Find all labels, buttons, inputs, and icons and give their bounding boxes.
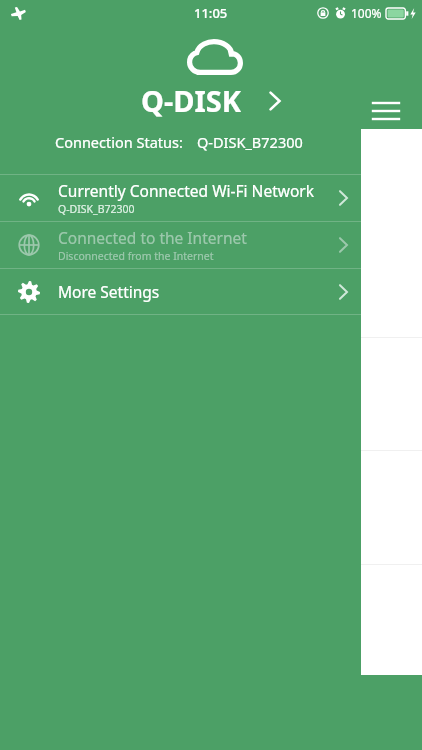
staticText: Disconnected from the Internet xyxy=(58,249,214,263)
staticText: 100% xyxy=(351,5,382,21)
staticText: Connected to the Internet xyxy=(58,227,247,248)
button[interactable]: Currently Connected Wi-Fi Network xyxy=(0,175,361,221)
staticText: Currently Connected Wi-Fi Network xyxy=(58,180,314,201)
button[interactable]: Menu xyxy=(363,88,408,133)
staticText: Q-DISK_B72300 xyxy=(58,202,135,216)
button[interactable]: Connected to the Internet xyxy=(0,222,361,268)
staticText: 11:05 xyxy=(194,4,228,22)
staticText: Connection Status: xyxy=(55,132,183,152)
staticText: More Settings xyxy=(58,281,160,302)
button[interactable]: Q-DISK xyxy=(133,79,290,122)
staticText: Q-DISK xyxy=(141,81,241,120)
button[interactable]: More Settings xyxy=(0,269,361,314)
staticText: Q-DISK_B72300 xyxy=(197,132,303,152)
